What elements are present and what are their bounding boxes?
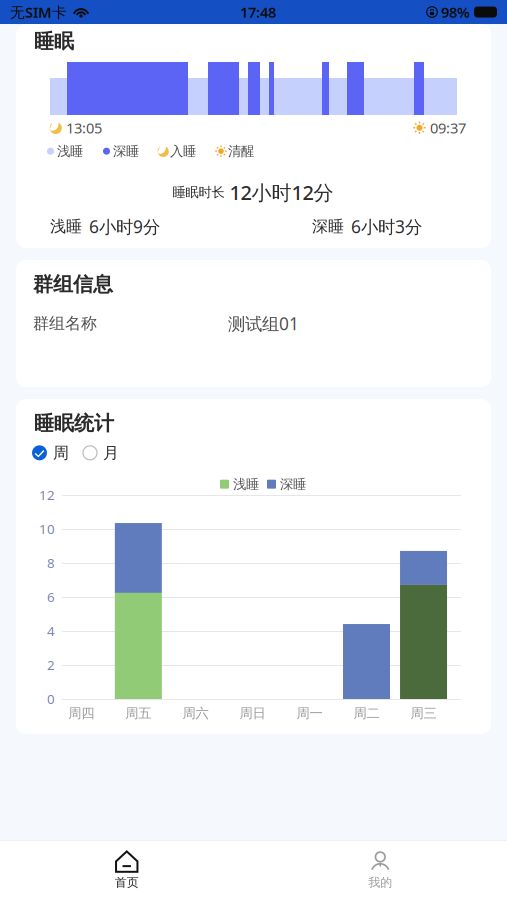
staticText: 周六 — [182, 705, 208, 721]
button[interactable]: 月 — [83, 443, 119, 463]
staticText: 浅睡 — [50, 217, 82, 236]
staticText: 0 — [47, 690, 55, 708]
staticText: 浅睡 — [57, 143, 83, 159]
staticText: 10 — [39, 520, 55, 538]
staticText: 13:05 — [66, 118, 102, 137]
button[interactable]: 我的 — [253, 840, 507, 900]
staticText: 深睡 — [312, 217, 344, 236]
staticText: 6小时3分 — [351, 215, 422, 238]
staticText: 睡眠统计 — [34, 411, 114, 436]
staticText: 4 — [47, 622, 55, 640]
staticText: 清醒 — [228, 143, 254, 159]
staticText: 浅睡 — [233, 476, 259, 492]
staticText: 98% — [441, 2, 470, 22]
staticText: 入睡 — [170, 143, 196, 159]
staticText: 周四 — [68, 705, 94, 721]
staticText: 无SIM卡 — [10, 2, 67, 22]
staticText: 12小时12分 — [229, 179, 333, 206]
button[interactable]: 周 — [32, 443, 69, 463]
staticText: 09:37 — [430, 118, 466, 137]
staticText: 首页 — [115, 875, 139, 890]
staticText: 17:48 — [240, 2, 276, 22]
staticText: 深睡 — [280, 476, 306, 492]
staticText: 周 — [53, 443, 69, 463]
staticText: 我的 — [368, 875, 392, 890]
staticText: 8 — [47, 554, 55, 572]
button[interactable]: 首页 — [0, 840, 253, 900]
staticText: 群组名称 — [33, 314, 97, 333]
staticText: 周三 — [410, 705, 436, 721]
staticText: 月 — [103, 443, 119, 463]
staticText: 周五 — [125, 705, 151, 721]
staticText: 群组信息 — [33, 272, 113, 297]
staticText: 睡眠时长 — [172, 184, 224, 200]
staticText: 周一 — [296, 705, 322, 721]
staticText: 睡眠 — [34, 29, 74, 54]
staticText: 周二 — [353, 705, 379, 721]
staticText: 深睡 — [113, 143, 139, 159]
staticText: 6 — [47, 588, 55, 606]
staticText: 周日 — [239, 705, 265, 721]
staticText: 2 — [47, 656, 55, 674]
staticText: 6小时9分 — [89, 215, 160, 238]
staticText: 12 — [39, 486, 55, 504]
staticText: 测试组01 — [228, 312, 299, 335]
